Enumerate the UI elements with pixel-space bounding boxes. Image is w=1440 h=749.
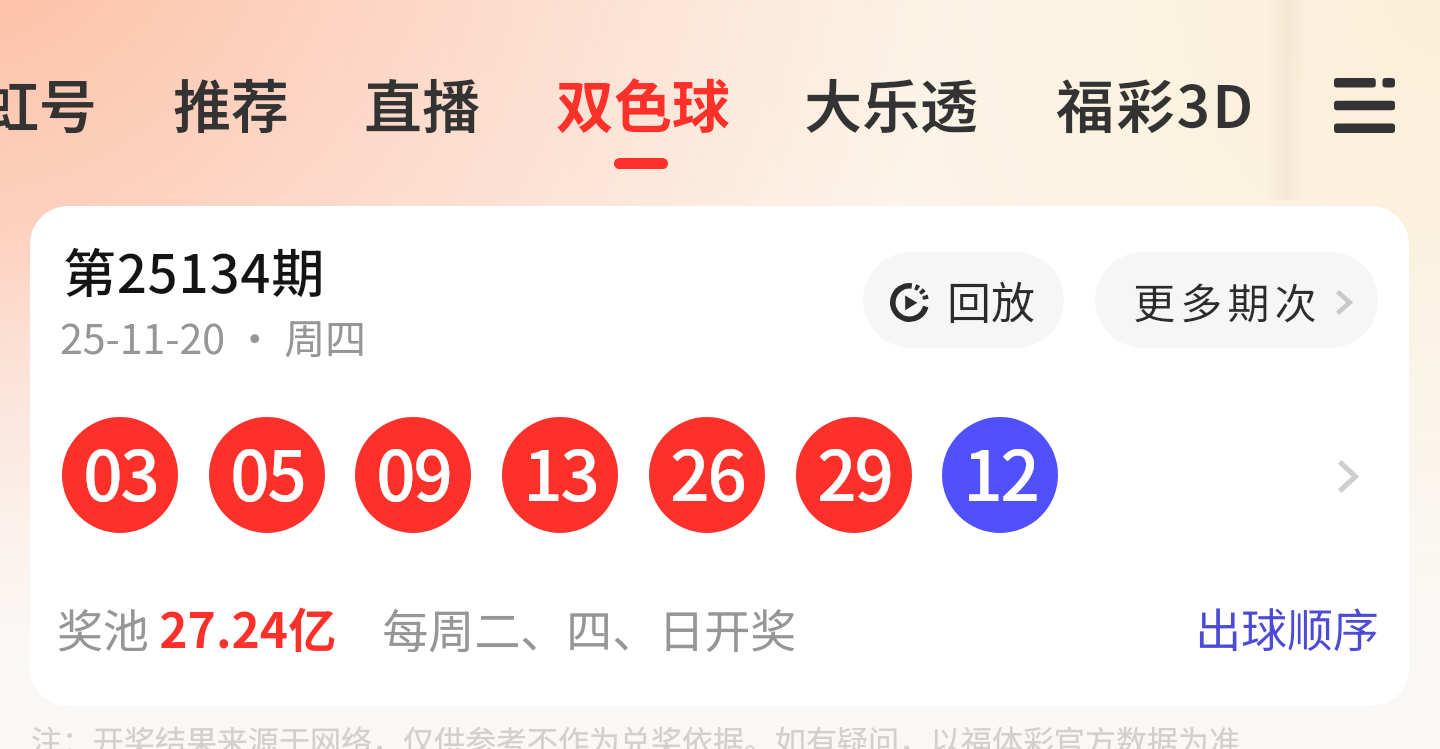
staticText: 12 bbox=[963, 421, 1038, 521]
button[interactable]: 推荐 bbox=[147, 20, 316, 196]
button[interactable]: 09 bbox=[355, 417, 471, 533]
staticText: 13 bbox=[523, 421, 598, 521]
button[interactable]: 双色球 bbox=[530, 20, 757, 196]
staticText: 福彩3D bbox=[1056, 61, 1256, 145]
button[interactable]: 更多期次 bbox=[1095, 252, 1378, 348]
staticText: 第25134期 bbox=[63, 232, 325, 309]
staticText: 05 bbox=[230, 421, 305, 521]
staticText: 03 bbox=[83, 421, 158, 521]
staticText: 25-11-20 · 周四 bbox=[60, 306, 367, 365]
button[interactable]: 03 bbox=[62, 417, 178, 533]
staticText: 26 bbox=[670, 421, 745, 521]
staticText: 注：开奖结果来源于网络，仅供参考不作为兑奖依据。如有疑问，以福体彩官方数据为准 bbox=[31, 717, 1240, 749]
staticText: 直播 bbox=[364, 61, 481, 145]
button[interactable]: 26 bbox=[649, 417, 765, 533]
button[interactable]: 虹号 bbox=[0, 20, 124, 196]
button[interactable]: 大乐透 bbox=[778, 20, 1005, 196]
button[interactable]: More numbers bbox=[1310, 435, 1390, 515]
button[interactable]: 出球顺序 bbox=[1175, 574, 1395, 664]
button[interactable]: 回放 bbox=[863, 252, 1064, 348]
staticText: 更多期次 bbox=[1133, 270, 1322, 331]
staticText: 双色球 bbox=[556, 61, 731, 145]
button[interactable]: 29 bbox=[796, 417, 912, 533]
staticText: 大乐透 bbox=[804, 61, 979, 145]
staticText: 回放 bbox=[947, 268, 1035, 332]
button[interactable]: 05 bbox=[209, 417, 325, 533]
button[interactable]: 福彩3D bbox=[1030, 20, 1282, 196]
button[interactable]: 直播 bbox=[338, 20, 507, 196]
staticText: 出球顺序 bbox=[1195, 594, 1379, 661]
staticText: 29 bbox=[817, 421, 892, 521]
staticText: 推荐 bbox=[173, 61, 290, 145]
staticText: 奖池 27.24亿 每周二、四、日开奖 bbox=[57, 592, 797, 662]
staticText: 09 bbox=[376, 421, 451, 521]
button[interactable]: Menu bbox=[1310, 54, 1420, 154]
button[interactable]: 12 bbox=[942, 417, 1058, 533]
staticText: 虹号 bbox=[0, 61, 98, 145]
button[interactable]: 13 bbox=[502, 417, 618, 533]
